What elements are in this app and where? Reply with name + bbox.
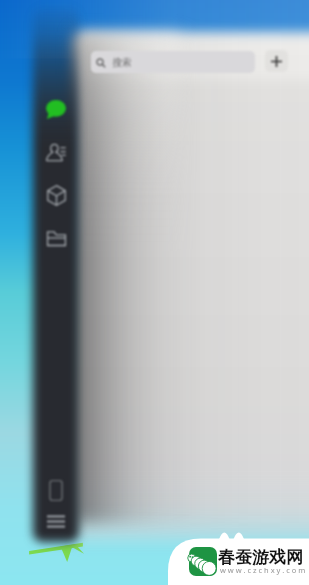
button[interactable]: Contacts (43, 139, 69, 165)
staticText: 搜索 (112, 56, 132, 69)
staticText: 春蚕游戏网 (218, 547, 303, 568)
staticText: w w w . c z c h x y . c o m (220, 565, 306, 575)
button[interactable]: Phone (43, 477, 69, 503)
button[interactable]: Discover (43, 182, 69, 208)
button[interactable]: Menu (43, 508, 69, 534)
button[interactable]: 搜索 (91, 51, 255, 73)
button[interactable]: Files (43, 225, 69, 251)
button[interactable]: Add (265, 50, 288, 72)
button[interactable]: Chats (43, 96, 69, 122)
